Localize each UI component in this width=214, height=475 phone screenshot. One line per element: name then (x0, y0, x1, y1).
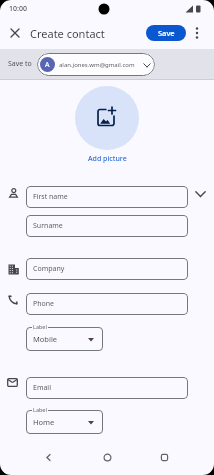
staticText: A (45, 60, 50, 70)
staticText: 10:00 (9, 4, 27, 14)
button[interactable]: Surname (26, 215, 188, 237)
button[interactable] (6, 24, 24, 42)
staticText: Create contact (30, 26, 105, 41)
button[interactable]: Company (26, 258, 188, 280)
staticText: Phone (33, 299, 55, 309)
button[interactable]: Add picture (75, 153, 139, 165)
button[interactable] (101, 451, 114, 464)
button[interactable]: First name (26, 186, 188, 208)
staticText: Email (33, 383, 51, 393)
staticText: alan.jones.wm@gmail.com (59, 61, 135, 69)
button[interactable] (158, 451, 171, 464)
button[interactable]: Save (146, 25, 186, 41)
button[interactable]: Phone (26, 293, 188, 315)
staticText: Company (33, 264, 65, 274)
staticText: Mobile (33, 334, 58, 344)
staticText: Save (158, 28, 175, 38)
staticText: Surname (33, 221, 63, 231)
staticText: Add picture (88, 154, 127, 164)
staticText: Label (33, 323, 47, 330)
staticText: Save to (8, 59, 32, 69)
staticText: First name (33, 192, 68, 202)
button[interactable]: A (37, 53, 155, 76)
button[interactable] (191, 24, 203, 42)
button[interactable] (195, 191, 206, 198)
staticText: Label (33, 406, 47, 413)
button[interactable] (42, 451, 55, 464)
button[interactable]: Home (26, 410, 103, 434)
button[interactable] (75, 86, 139, 150)
button[interactable]: Email (26, 377, 188, 399)
button[interactable]: Mobile (26, 327, 103, 351)
staticText: Home (33, 417, 55, 427)
